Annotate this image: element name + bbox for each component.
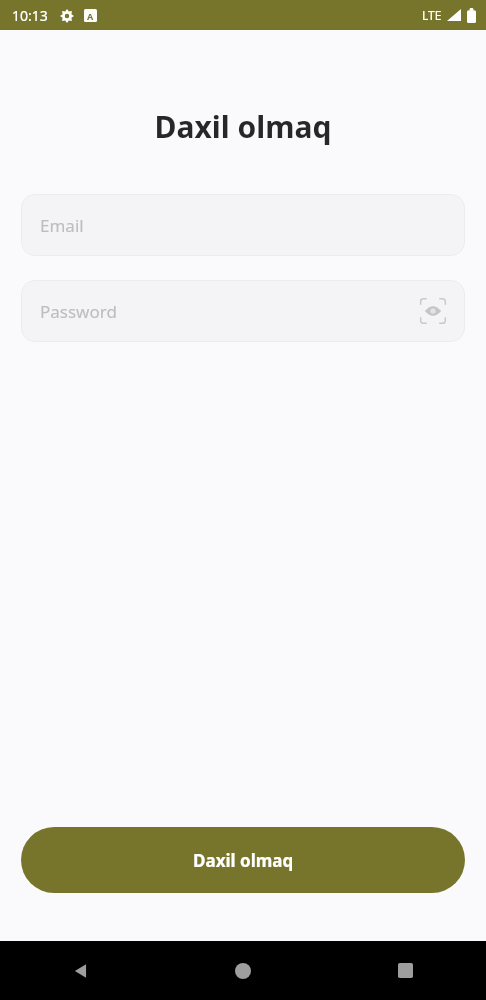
button[interactable]: Home (162, 941, 324, 1000)
staticText: Daxil olmaq (193, 849, 294, 872)
button[interactable]: Show password (415, 293, 451, 329)
button[interactable]: Email (21, 194, 465, 256)
button[interactable]: Recent apps (324, 941, 486, 1000)
staticText: 10:13 (12, 6, 48, 25)
button[interactable]: Daxil olmaq (21, 827, 465, 893)
button[interactable]: Back (0, 941, 162, 1000)
staticText: Email (40, 214, 84, 237)
staticText: Password (40, 300, 117, 323)
button[interactable]: Password (21, 280, 465, 342)
staticText: LTE (422, 7, 442, 23)
staticText: Daxil olmaq (0, 106, 486, 147)
staticText: A (87, 10, 94, 22)
